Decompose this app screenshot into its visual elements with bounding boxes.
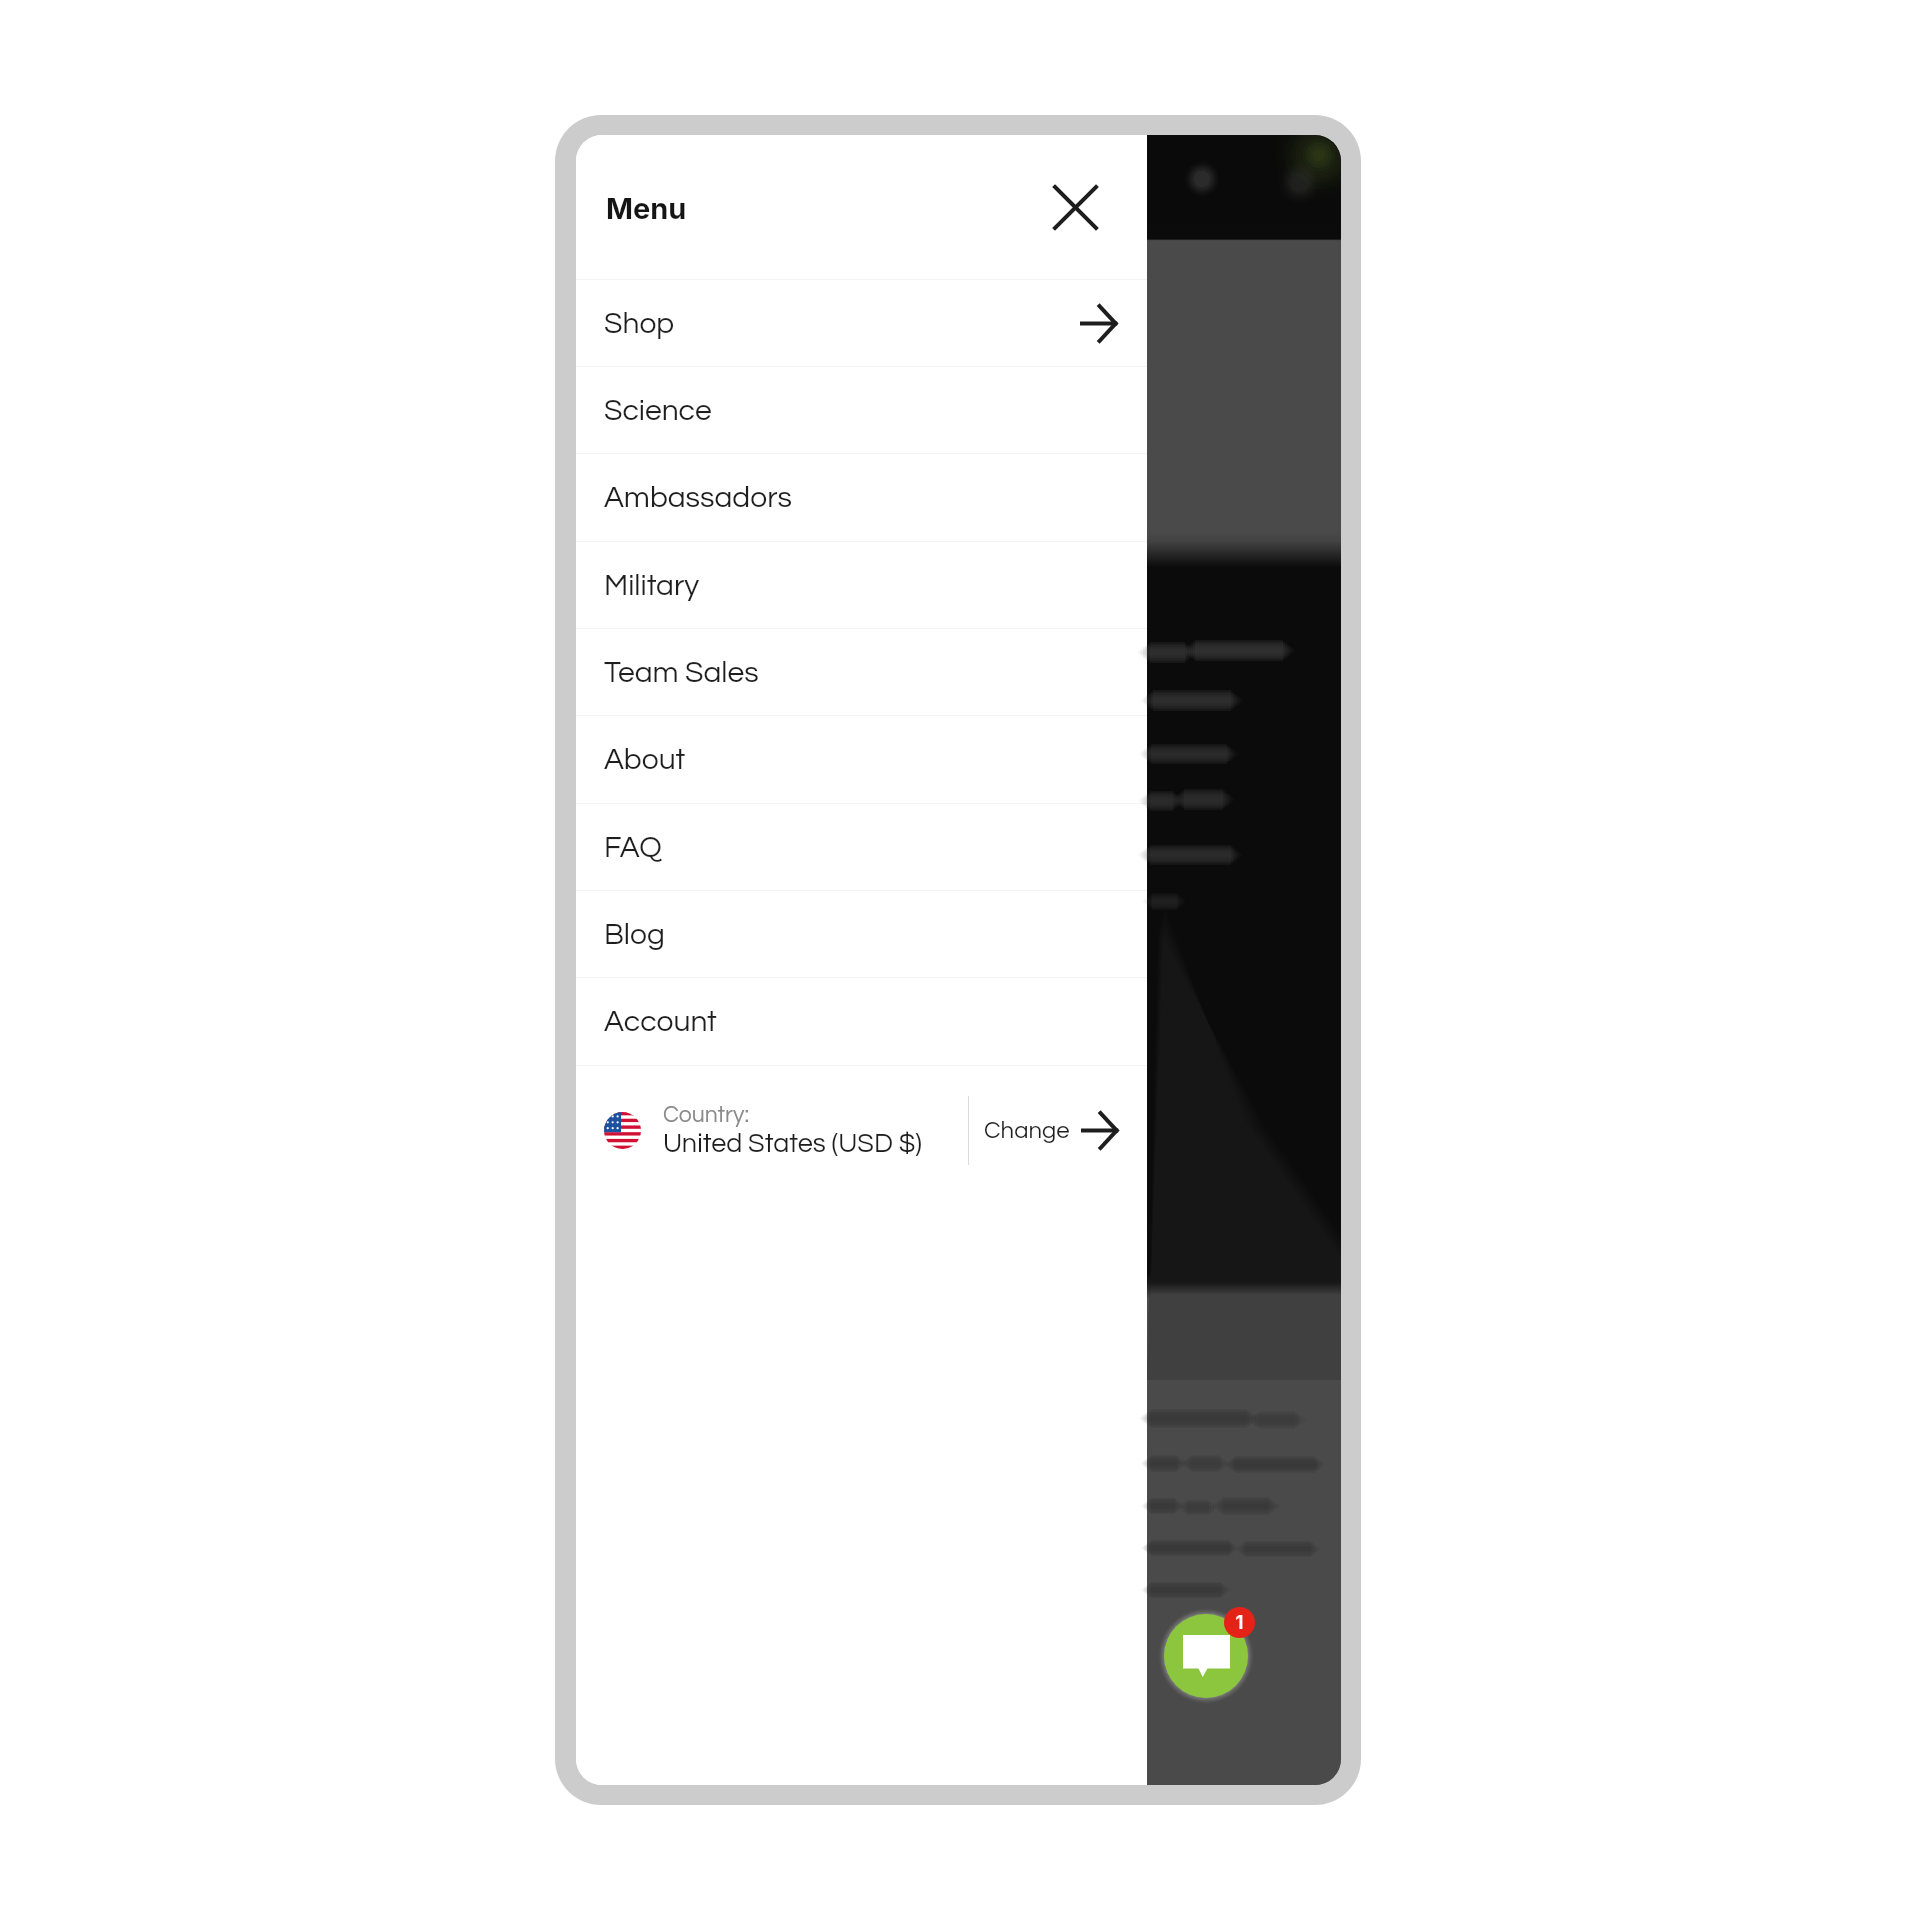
button[interactable]: Account — [576, 978, 1147, 1065]
staticText: Menu — [606, 191, 687, 226]
button[interactable]: Close menu — [1046, 178, 1104, 236]
button[interactable]: Military — [576, 542, 1147, 628]
button[interactable]: Change — [967, 1066, 1147, 1194]
staticText: Ambassadors — [604, 482, 792, 513]
staticText: About — [604, 744, 686, 775]
other: Open Shop submenu — [1082, 306, 1117, 341]
button[interactable]: Science — [576, 367, 1147, 453]
staticText: Military — [604, 570, 700, 601]
staticText: Science — [604, 395, 712, 426]
button[interactable]: Open chat — [1164, 1614, 1248, 1698]
staticText: Shop — [604, 308, 675, 339]
button[interactable]: Team Sales — [576, 629, 1147, 715]
staticText: Blog — [604, 919, 665, 950]
staticText: FAQ — [604, 832, 662, 863]
staticText: 1 — [1235, 1611, 1244, 1634]
button[interactable]: FAQ — [576, 804, 1147, 890]
button[interactable]: Shop — [576, 280, 1147, 366]
staticText: Country: — [663, 1103, 750, 1127]
button[interactable]: About — [576, 716, 1147, 803]
button[interactable]: Blog — [576, 891, 1147, 977]
button[interactable]: Ambassadors — [576, 454, 1147, 541]
button[interactable]: Country: — [576, 1066, 969, 1194]
staticText: Team Sales — [604, 657, 759, 688]
staticText: Change — [984, 1118, 1070, 1143]
staticText: Account — [604, 1006, 717, 1037]
staticText: United States (USD $) — [663, 1130, 922, 1158]
